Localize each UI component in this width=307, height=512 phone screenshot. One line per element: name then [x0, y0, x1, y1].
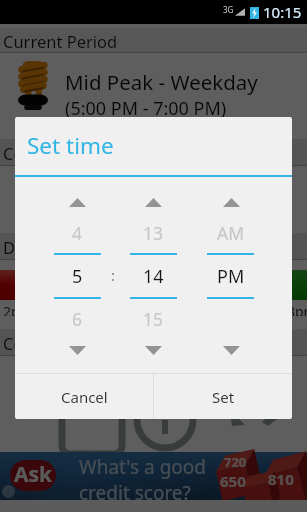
staticText: Ask — [14, 460, 53, 489]
staticText: 720 — [224, 453, 247, 471]
staticText: credit score? — [79, 480, 191, 502]
button[interactable]: Cancel — [15, 374, 153, 419]
staticText: Cancel — [61, 387, 108, 407]
staticText: 650 — [220, 471, 246, 491]
staticText: 12pm — [0, 302, 33, 316]
button[interactable]: Mid Peak - Weekday — [0, 53, 307, 117]
staticText: 8pm — [287, 302, 307, 316]
staticText: 13 — [143, 221, 164, 245]
staticText: PM — [217, 264, 245, 289]
button[interactable]: Increment — [131, 191, 175, 213]
staticText: AM — [217, 221, 245, 245]
staticText: 3G — [223, 4, 234, 15]
staticText: 10:15 — [263, 2, 302, 22]
staticText: Set — [212, 387, 235, 407]
button[interactable]: Increment — [209, 191, 253, 213]
button[interactable]: Decrement — [55, 339, 99, 361]
staticText: Set time — [27, 130, 114, 161]
staticText: 15 — [143, 307, 164, 331]
staticText: 14 — [143, 264, 164, 289]
button[interactable]: Increment — [55, 191, 99, 213]
staticText: Current Period — [3, 30, 118, 52]
button[interactable]: Ask — [0, 452, 307, 500]
staticText: : — [111, 265, 116, 285]
staticText: 5 — [72, 264, 83, 289]
staticText: Mid Peak - Weekday — [65, 68, 258, 96]
button[interactable]: Decrement — [131, 339, 175, 361]
staticText: 6 — [72, 307, 83, 331]
staticText: Compare Rates — [3, 142, 122, 164]
button[interactable]: Set — [154, 374, 292, 419]
staticText: i — [7, 486, 10, 497]
staticText: (5:00 PM - 7:00 PM) — [65, 96, 227, 121]
staticText: What's a good — [79, 454, 207, 480]
staticText: Cost Summary — [3, 332, 117, 354]
staticText: Daily Usage — [3, 236, 95, 258]
staticText: 810 — [268, 469, 294, 489]
staticText: 4 — [72, 221, 83, 245]
button[interactable]: Decrement — [209, 339, 253, 361]
